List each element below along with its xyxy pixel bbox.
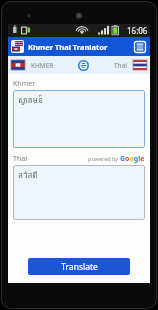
button[interactable]: Translate [28,258,130,275]
staticText: Google [120,154,145,164]
staticText: Thai [13,154,27,164]
button[interactable] [11,60,25,70]
staticText: Translate [61,261,98,273]
staticText: สวัสดี [18,169,38,182]
button[interactable]: Swap languages [77,59,90,72]
button[interactable]: สวัสดี [13,165,145,220]
button[interactable]: ស្វាគមន៍ [13,90,145,148]
button[interactable]: Thai [114,61,127,70]
button[interactable] [133,60,147,70]
staticText: 16:06 [127,25,148,36]
staticText: powered by [88,155,120,162]
staticText: Khmer Thai Tranlator [28,42,108,52]
button[interactable]: Menu [133,40,147,54]
button[interactable]: KHMER [31,61,54,70]
staticText: Thai [114,61,127,70]
staticText: ស្វាគមន៍ [18,94,43,105]
staticText: Khmer [13,79,36,89]
staticText: KHMER [31,61,54,70]
